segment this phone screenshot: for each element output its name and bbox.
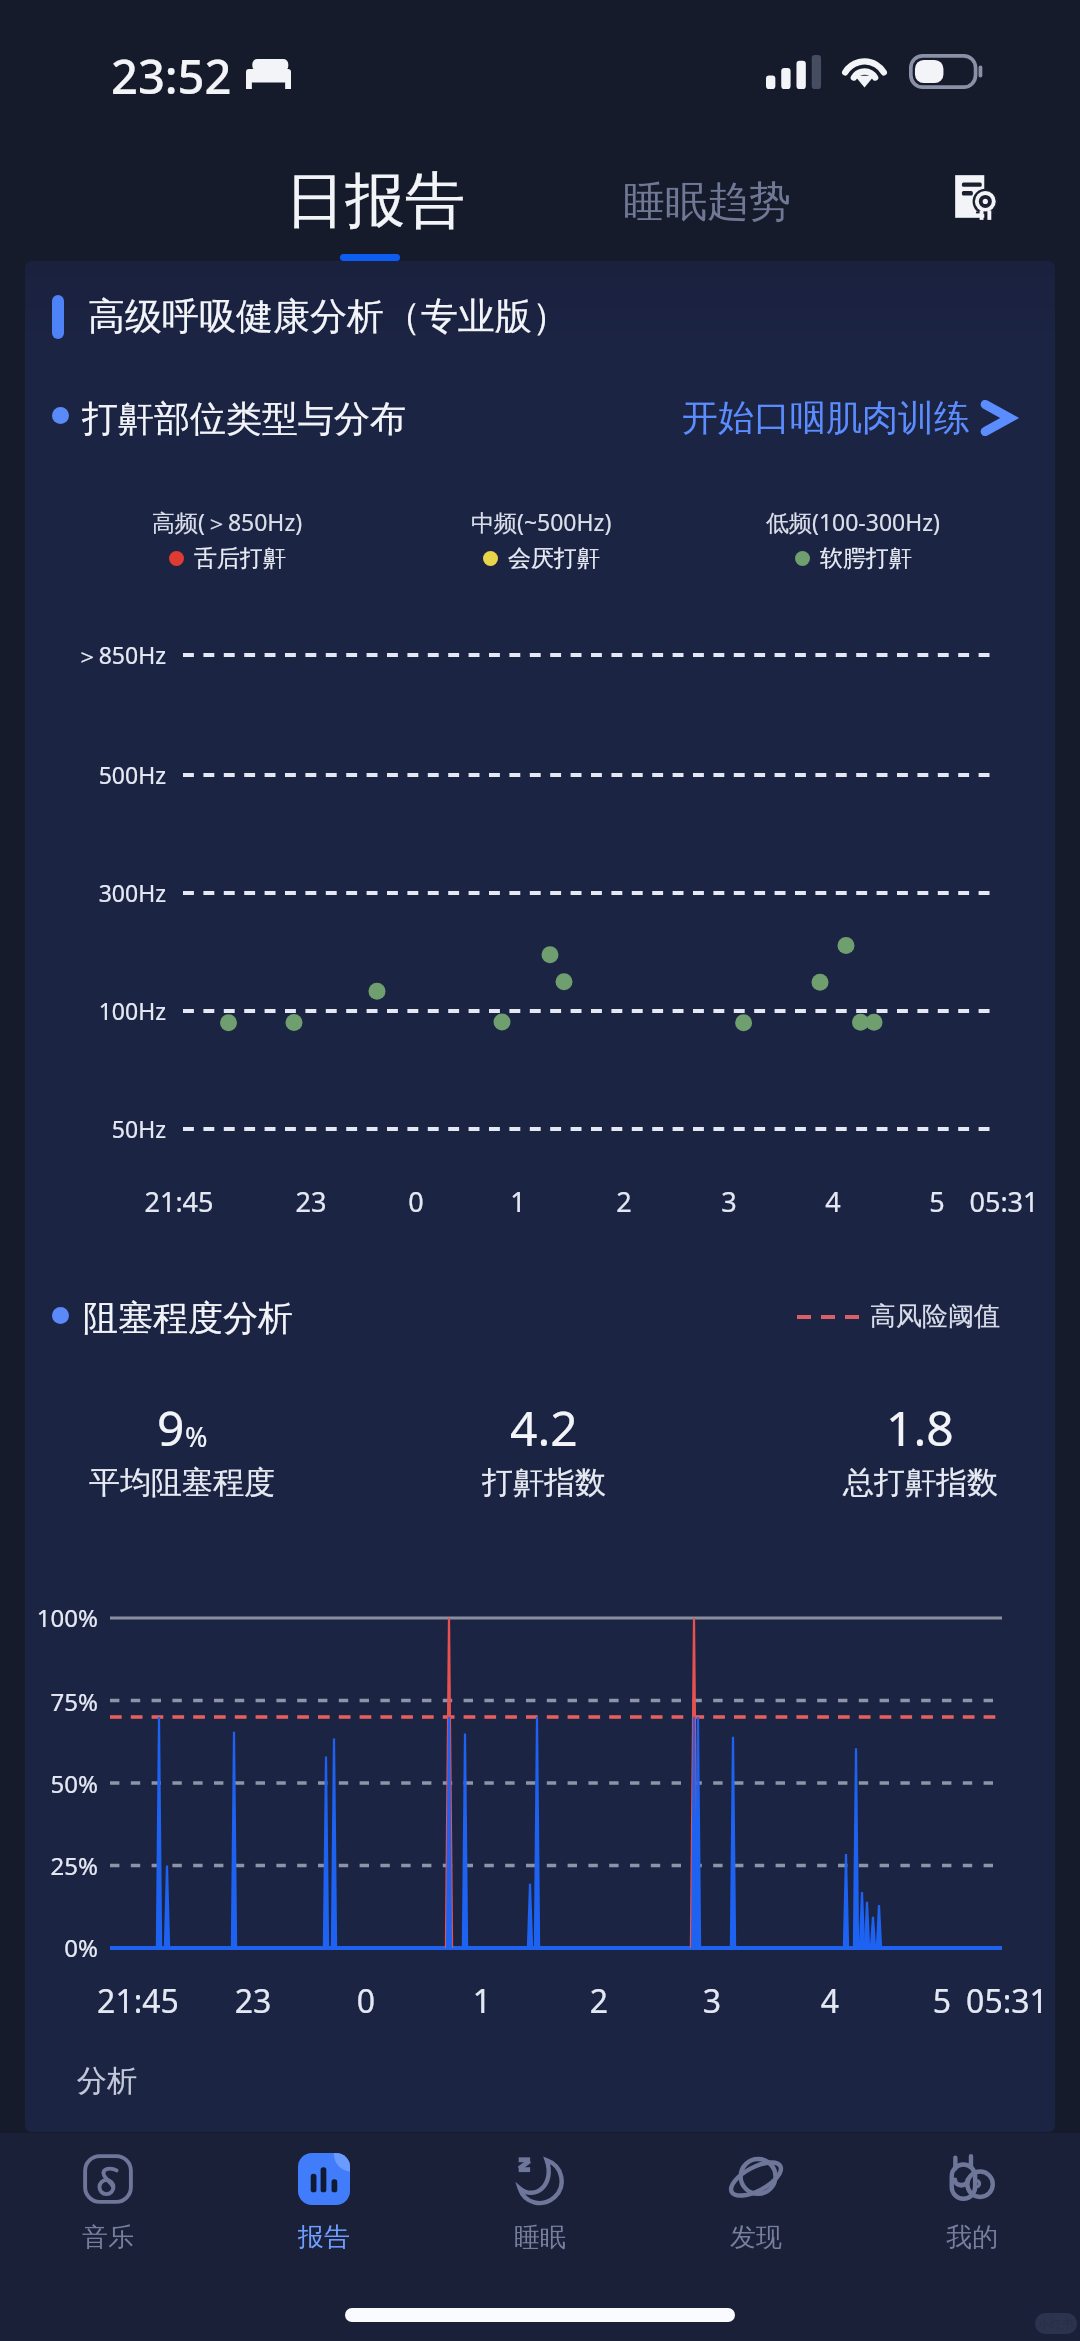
staticText: 0 (336, 1183, 496, 1220)
staticText: 05:31 (927, 1979, 1080, 2023)
staticText: 50% (0, 1767, 98, 1800)
staticText: 日报告 (285, 163, 465, 239)
staticText: 23 (173, 1979, 333, 2023)
button[interactable]: 我的 (864, 2153, 1080, 2254)
staticText: 05:31 (924, 1183, 1080, 1220)
staticText: 软腭打鼾 (820, 544, 912, 573)
staticText: 分析 (77, 2062, 137, 2100)
button[interactable]: 睡眠趋势 (607, 176, 807, 229)
button[interactable]: 开始口咽肌肉训练 (682, 395, 1018, 440)
staticText: 75% (0, 1685, 98, 1718)
staticText: 舌后打鼾 (194, 544, 286, 573)
staticText: 阻塞程度分析 (83, 1296, 293, 1340)
button[interactable]: 音乐 (0, 2153, 216, 2254)
button[interactable]: 日报告 (275, 163, 475, 239)
staticText: 音乐 (82, 2221, 134, 2254)
staticText: 报告 (298, 2221, 350, 2254)
staticText: 高频(＞850Hz) (152, 506, 303, 537)
button[interactable]: Sleep report certificate (940, 160, 1014, 234)
staticText: 2 (519, 1979, 679, 2023)
staticText: 23:52 (111, 44, 232, 108)
staticText: 1.8 (886, 1395, 954, 1460)
staticText: 21:45 (58, 1979, 218, 2023)
staticText: 会厌打鼾 (508, 544, 600, 573)
staticText: 打鼾指数 (482, 1463, 606, 1502)
staticText: 9 (157, 1395, 185, 1460)
staticText: 睡眠 (514, 2221, 566, 2254)
staticText: 4 (750, 1979, 910, 2023)
staticText: 25% (0, 1849, 98, 1882)
button[interactable]: 报告 (216, 2153, 432, 2254)
staticText: 100Hz (0, 995, 166, 1026)
staticText: 1 (402, 1979, 562, 2023)
staticText: 平均阻塞程度 (89, 1463, 275, 1502)
button[interactable]: 发现 (648, 2153, 864, 2254)
staticText: 中频(~500Hz) (471, 506, 612, 537)
staticText: 2 (544, 1183, 704, 1220)
staticText: 100% (0, 1601, 98, 1634)
staticText: 低频(100-300Hz) (766, 506, 940, 537)
staticText: 3 (649, 1183, 809, 1220)
button[interactable]: 睡眠 (432, 2153, 648, 2254)
staticText: 5 (857, 1183, 1017, 1220)
staticText: 0 (286, 1979, 446, 2023)
staticText: 打鼾部位类型与分布 (82, 396, 406, 441)
staticText: 我的 (946, 2221, 998, 2254)
staticText: 高风险阈值 (870, 1300, 1000, 1333)
staticText: 开始口咽肌肉训练 (682, 395, 970, 440)
staticText: % (185, 1418, 208, 1455)
staticText: 睡眠趋势 (623, 176, 791, 229)
staticText: 5 (862, 1979, 1022, 2023)
staticText: 21:45 (99, 1183, 259, 1220)
staticText: 4.2 (510, 1395, 578, 1460)
staticText: 0% (0, 1931, 98, 1964)
staticText: 300Hz (0, 877, 166, 908)
staticText: 发现 (730, 2221, 782, 2254)
staticText: 3 (632, 1979, 792, 2023)
staticText: 50Hz (0, 1113, 166, 1144)
staticText: 1 (438, 1183, 598, 1220)
staticText: 500Hz (0, 759, 166, 790)
staticText: ＞850Hz (0, 639, 166, 670)
staticText: 23 (231, 1183, 391, 1220)
staticText: 4 (753, 1183, 913, 1220)
staticText: 高级呼吸健康分析（专业版） (88, 293, 569, 340)
staticText: 总打鼾指数 (843, 1463, 998, 1502)
